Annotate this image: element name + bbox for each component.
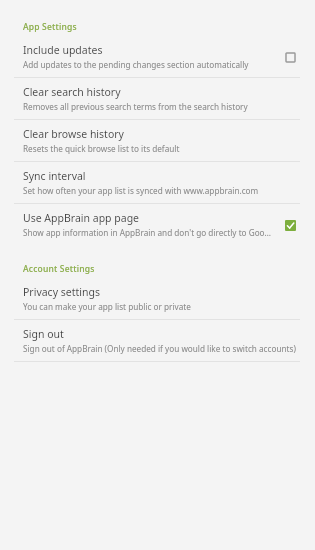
button[interactable]: Clear search history bbox=[0, 78, 315, 119]
staticText: Clear browse history bbox=[23, 127, 124, 141]
staticText: Account Settings bbox=[23, 263, 95, 275]
staticText: Add updates to the pending changes secti… bbox=[23, 59, 249, 70]
staticText: Resets the quick browse list to its defa… bbox=[23, 143, 180, 154]
staticText: Clear search history bbox=[23, 85, 121, 99]
staticText: You can make your app list public or pri… bbox=[23, 301, 191, 312]
button[interactable]: Clear browse history bbox=[0, 120, 315, 161]
button[interactable]: Include updates toggle bbox=[279, 46, 301, 68]
button[interactable]: Use AppBrain app page bbox=[0, 204, 315, 245]
button[interactable]: Privacy settings bbox=[0, 278, 315, 319]
button[interactable]: Use AppBrain app page toggle bbox=[279, 214, 301, 236]
staticText: Privacy settings bbox=[23, 285, 100, 299]
button[interactable]: Sign out bbox=[0, 320, 315, 361]
staticText: Sign out bbox=[23, 327, 64, 341]
button[interactable]: Include updates bbox=[0, 36, 315, 77]
staticText: Use AppBrain app page bbox=[23, 211, 140, 225]
staticText: App Settings bbox=[23, 21, 77, 33]
staticText: Include updates bbox=[23, 43, 103, 57]
staticText: Sync interval bbox=[23, 169, 86, 183]
staticText: Set how often your app list is synced wi… bbox=[23, 185, 259, 196]
staticText: Show app information in AppBrain and don… bbox=[23, 227, 273, 238]
staticText: Removes all previous search terms from t… bbox=[23, 101, 248, 112]
staticText: Sign out of AppBrain (Only needed if you… bbox=[23, 343, 296, 354]
button[interactable]: Sync interval bbox=[0, 162, 315, 203]
